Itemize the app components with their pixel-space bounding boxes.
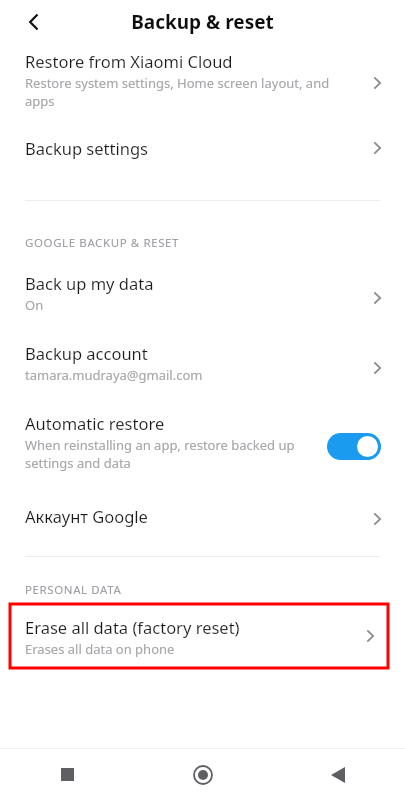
button[interactable]: Automatic restore toggle: [327, 433, 381, 460]
staticText: settings and data: [25, 454, 131, 472]
button[interactable]: Backup settings: [0, 122, 405, 174]
staticText: tamara.mudraya@gmail.com: [25, 366, 203, 384]
staticText: Restore system settings, Home screen lay…: [25, 74, 330, 92]
staticText: Restore from Xiaomi Cloud: [25, 50, 233, 72]
staticText: When reinstalling an app, restore backed…: [25, 436, 295, 454]
button[interactable]: Back up my data: [0, 272, 405, 324]
staticText: Back up my data: [25, 272, 154, 294]
staticText: Backup account: [25, 342, 148, 364]
button[interactable]: Erase all data (factory reset): [10, 604, 388, 668]
staticText: On: [25, 296, 44, 314]
staticText: Аккаунт Google: [25, 505, 148, 527]
staticText: Erases all data on phone: [25, 640, 175, 658]
button[interactable]: Back: [14, 2, 54, 42]
button[interactable]: Home: [135, 749, 270, 800]
button[interactable]: Backup account: [0, 342, 405, 394]
staticText: GOOGLE BACKUP & RESET: [25, 235, 180, 251]
staticText: apps: [25, 92, 55, 110]
staticText: Erase all data (factory reset): [25, 616, 240, 638]
button[interactable]: Аккаунт Google: [0, 497, 405, 541]
button[interactable]: Restore from Xiaomi Cloud: [0, 44, 405, 122]
button[interactable]: Automatic restore: [0, 412, 405, 480]
staticText: Backup & reset: [131, 9, 274, 35]
staticText: PERSONAL DATA: [25, 582, 122, 598]
button[interactable]: Recent apps: [0, 749, 135, 800]
button[interactable]: Back: [270, 749, 405, 800]
staticText: Backup settings: [25, 137, 148, 159]
staticText: Automatic restore: [25, 412, 165, 434]
